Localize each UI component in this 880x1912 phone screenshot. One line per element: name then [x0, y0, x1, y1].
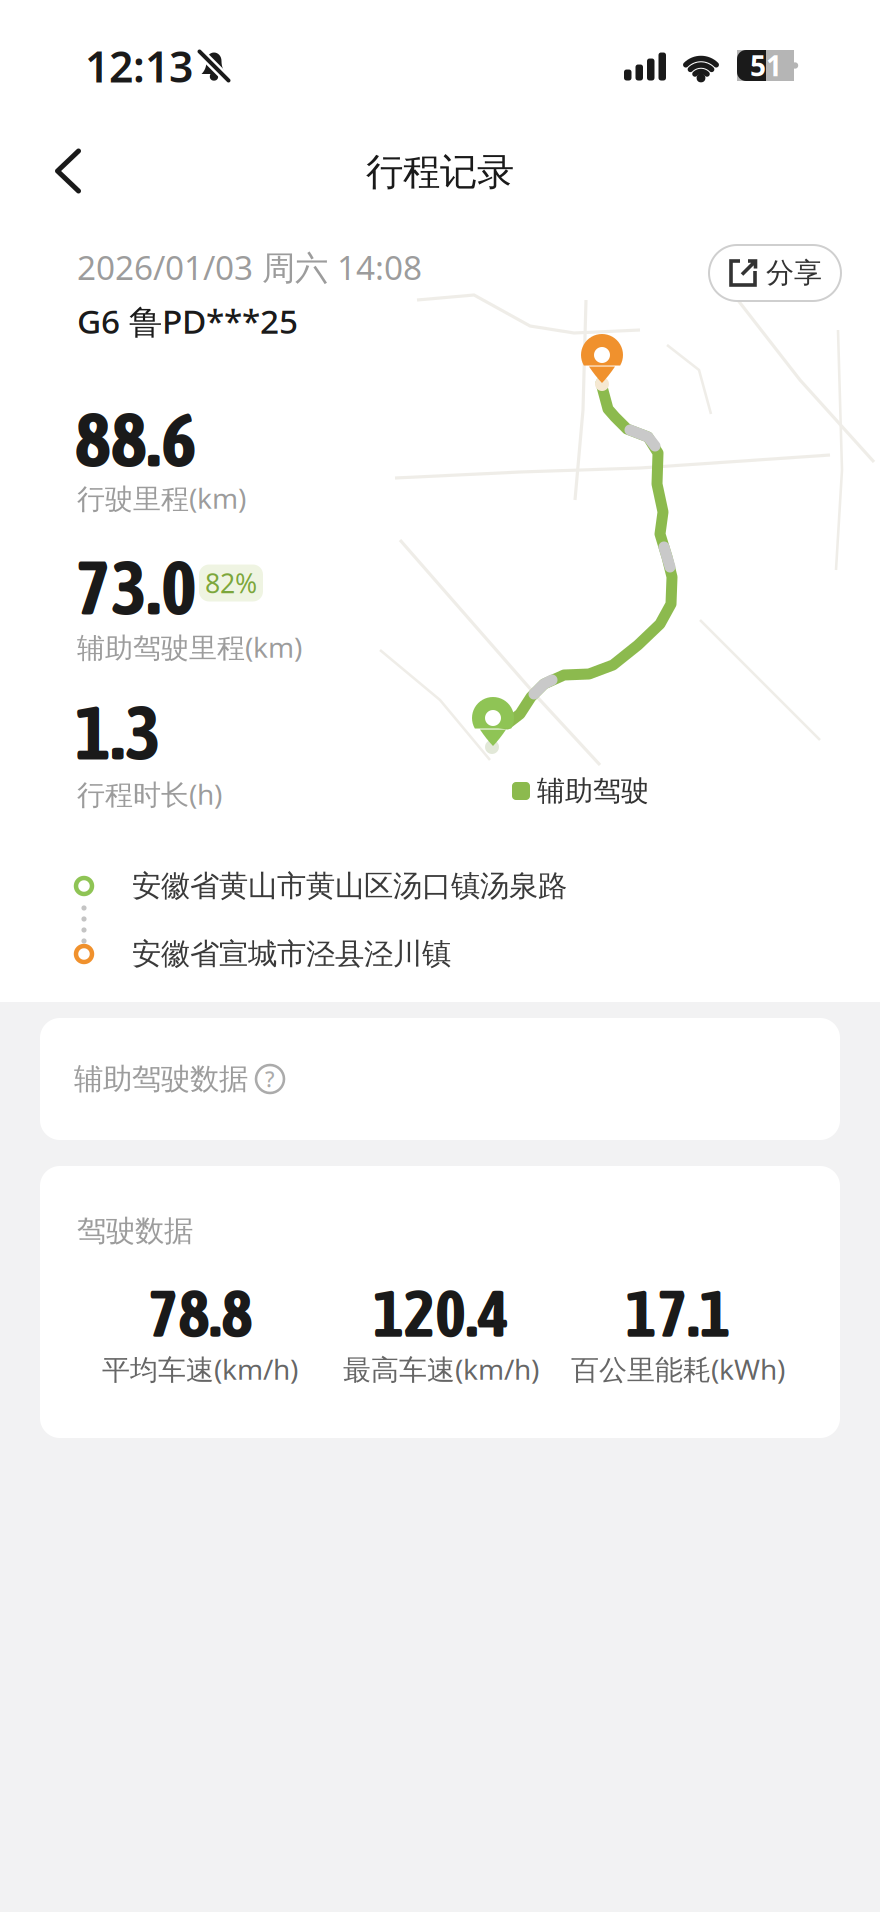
staticText: 辅助驾驶数据 — [74, 1061, 248, 1097]
staticText: 行驶里程(km) — [77, 479, 246, 517]
staticText: 17.1 — [625, 1275, 730, 1351]
staticText: 安徽省宣城市泾县泾川镇 — [132, 936, 451, 972]
staticText: 51 — [750, 47, 782, 84]
staticText: 行程记录 — [366, 149, 514, 195]
staticText: G6 鲁PD***25 — [77, 299, 298, 343]
staticText: 平均车速(km/h) — [102, 1350, 298, 1388]
staticText: 73.0 — [75, 543, 197, 631]
staticText: 12:13 — [85, 38, 193, 94]
button[interactable]: Back — [43, 137, 92, 205]
staticText: 120.4 — [373, 1275, 509, 1351]
staticText: 2026/01/03 周六 14:08 — [77, 245, 422, 289]
staticText: 82% — [205, 565, 257, 601]
staticText: 78.8 — [147, 1275, 252, 1351]
staticText: ? — [265, 1065, 275, 1093]
staticText: 88.6 — [75, 395, 197, 483]
staticText: 辅助驾驶里程(km) — [77, 628, 302, 666]
staticText: 百公里能耗(kWh) — [571, 1350, 785, 1388]
staticText: 辅助驾驶 — [537, 774, 649, 808]
staticText: 安徽省黄山市黄山区汤口镇汤泉路 — [132, 868, 567, 904]
button[interactable]: 辅助驾驶数据 — [40, 1018, 840, 1140]
staticText: 分享 — [766, 256, 822, 290]
staticText: 1.3 — [75, 688, 161, 776]
staticText: 最高车速(km/h) — [343, 1350, 539, 1388]
button[interactable]: 分享 — [709, 245, 841, 301]
staticText: 驾驶数据 — [77, 1213, 193, 1249]
staticText: 行程时长(h) — [77, 775, 222, 813]
